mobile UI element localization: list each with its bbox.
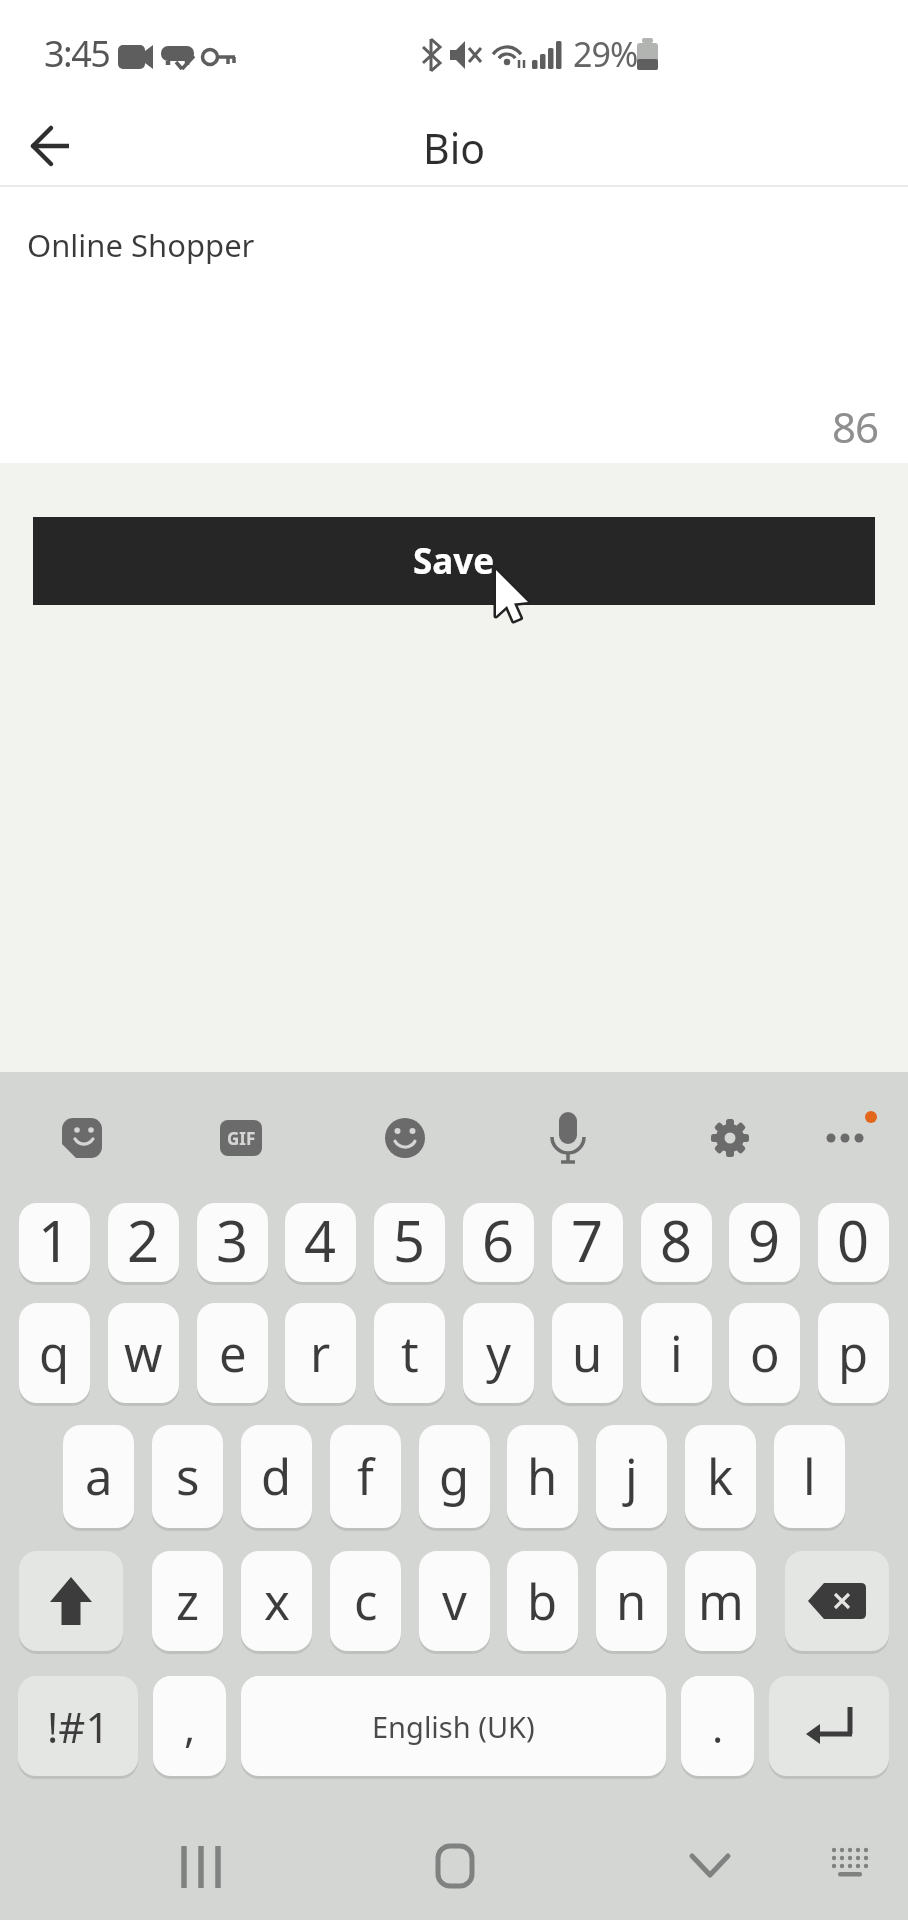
staticText: 8	[660, 1203, 693, 1278]
button[interactable]: 1	[19, 1203, 90, 1282]
button[interactable]: t	[374, 1303, 445, 1403]
staticText: p	[838, 1320, 869, 1387]
button[interactable]	[241, 1676, 666, 1776]
staticText: 1	[38, 1203, 71, 1278]
button[interactable]: q	[19, 1303, 90, 1403]
button[interactable]: d	[241, 1425, 312, 1528]
staticText: 3:45	[44, 29, 110, 78]
staticText: i	[670, 1320, 683, 1387]
button[interactable]: m	[685, 1551, 756, 1651]
staticText: GIF	[227, 1127, 256, 1150]
button[interactable]: 3	[197, 1203, 268, 1282]
staticText: ,	[184, 1698, 196, 1755]
button[interactable]: k	[685, 1425, 756, 1528]
button[interactable]: r	[285, 1303, 356, 1403]
button[interactable]	[769, 1676, 889, 1776]
staticText: !#1	[47, 1698, 110, 1755]
button[interactable]: y	[463, 1303, 534, 1403]
button[interactable]: z	[152, 1551, 223, 1651]
button[interactable]: 7	[552, 1203, 623, 1282]
button[interactable]	[19, 1551, 123, 1651]
button[interactable]: Save	[33, 517, 875, 605]
staticText: 29%	[573, 31, 638, 77]
staticText: h	[527, 1443, 558, 1510]
button[interactable]: l	[774, 1425, 845, 1528]
staticText: 3	[216, 1203, 249, 1278]
button[interactable]: 0	[818, 1203, 889, 1282]
staticText: e	[219, 1320, 247, 1387]
button[interactable]	[170, 1836, 232, 1898]
button[interactable]	[546, 1116, 590, 1160]
button[interactable]: b	[507, 1551, 578, 1651]
staticText: k	[707, 1443, 734, 1510]
button[interactable]: ,	[153, 1676, 226, 1776]
button[interactable]: 9	[729, 1203, 800, 1282]
staticText: .	[712, 1698, 724, 1755]
button[interactable]: !#1	[18, 1676, 138, 1776]
staticText: 2	[127, 1203, 160, 1278]
staticText: Bio	[423, 120, 486, 176]
staticText: Online Shopper	[27, 224, 255, 266]
button[interactable]: .	[681, 1676, 754, 1776]
staticText: c	[354, 1568, 378, 1635]
staticText: v	[442, 1568, 467, 1635]
staticText: d	[261, 1443, 292, 1510]
staticText: m	[698, 1568, 744, 1635]
button[interactable]: c	[330, 1551, 401, 1651]
staticText: 86	[832, 398, 879, 455]
button[interactable]: f	[330, 1425, 401, 1528]
button[interactable]: s	[152, 1425, 223, 1528]
button[interactable]	[18, 115, 84, 181]
button[interactable]: a	[63, 1425, 134, 1528]
button[interactable]: GIF	[220, 1120, 262, 1156]
button[interactable]: x	[241, 1551, 312, 1651]
staticText: b	[527, 1568, 558, 1635]
button[interactable]: j	[596, 1425, 667, 1528]
staticText: Save	[413, 537, 495, 585]
staticText: g	[439, 1443, 470, 1510]
staticText: y	[486, 1320, 511, 1387]
button[interactable]	[383, 1116, 427, 1160]
button[interactable]	[424, 1836, 486, 1898]
button[interactable]: 6	[463, 1203, 534, 1282]
button[interactable]: 8	[641, 1203, 712, 1282]
button[interactable]: i	[641, 1303, 712, 1403]
staticText: n	[616, 1568, 647, 1635]
button[interactable]: 2	[108, 1203, 179, 1282]
staticText: a	[85, 1443, 113, 1510]
button[interactable]	[820, 1836, 882, 1898]
button[interactable]: p	[818, 1303, 889, 1403]
staticText: r	[310, 1320, 331, 1387]
staticText: f	[357, 1443, 374, 1510]
button[interactable]	[60, 1116, 104, 1160]
button[interactable]	[708, 1116, 752, 1160]
button[interactable]	[785, 1551, 889, 1651]
staticText: English (UK)	[372, 1707, 535, 1746]
staticText: l	[803, 1443, 816, 1510]
staticText: 0	[837, 1203, 870, 1278]
button[interactable]: 5	[374, 1203, 445, 1282]
button[interactable]: e	[197, 1303, 268, 1403]
staticText: 9	[748, 1203, 781, 1278]
staticText: j	[625, 1443, 638, 1510]
button[interactable]	[823, 1116, 867, 1160]
button[interactable]: o	[729, 1303, 800, 1403]
button[interactable]: v	[419, 1551, 490, 1651]
staticText: s	[176, 1443, 200, 1510]
staticText: z	[176, 1568, 200, 1635]
button[interactable]: w	[108, 1303, 179, 1403]
button[interactable]: n	[596, 1551, 667, 1651]
staticText: 4	[304, 1203, 337, 1278]
staticText: x	[264, 1568, 290, 1635]
button[interactable]	[679, 1836, 741, 1898]
staticText: q	[39, 1320, 70, 1387]
button[interactable]: g	[419, 1425, 490, 1528]
staticText: 6	[482, 1203, 515, 1278]
staticText: t	[401, 1320, 419, 1387]
staticText: w	[124, 1320, 163, 1387]
staticText: u	[572, 1320, 603, 1387]
staticText: 5	[393, 1203, 426, 1278]
button[interactable]: 4	[285, 1203, 356, 1282]
button[interactable]: u	[552, 1303, 623, 1403]
button[interactable]: h	[507, 1425, 578, 1528]
